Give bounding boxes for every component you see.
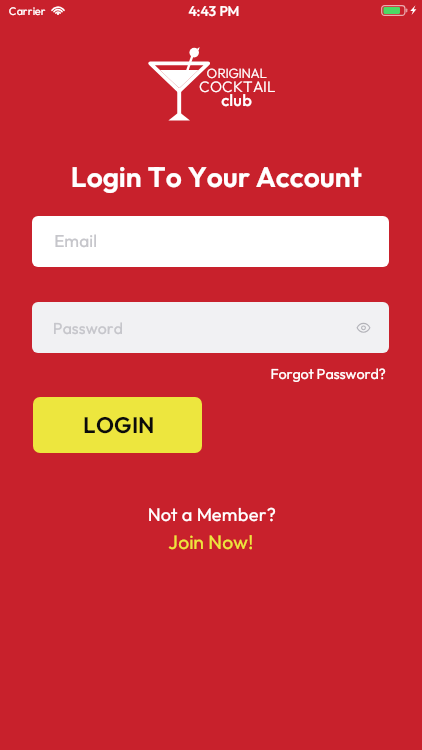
button[interactable]: Password	[32, 302, 389, 353]
button[interactable]: LOGIN	[33, 397, 202, 453]
button[interactable]: Show password	[349, 313, 379, 343]
button[interactable]: Email	[32, 216, 389, 267]
button[interactable]: Forgot Password?	[268, 363, 390, 386]
button[interactable]: Join Now!	[164, 532, 258, 556]
